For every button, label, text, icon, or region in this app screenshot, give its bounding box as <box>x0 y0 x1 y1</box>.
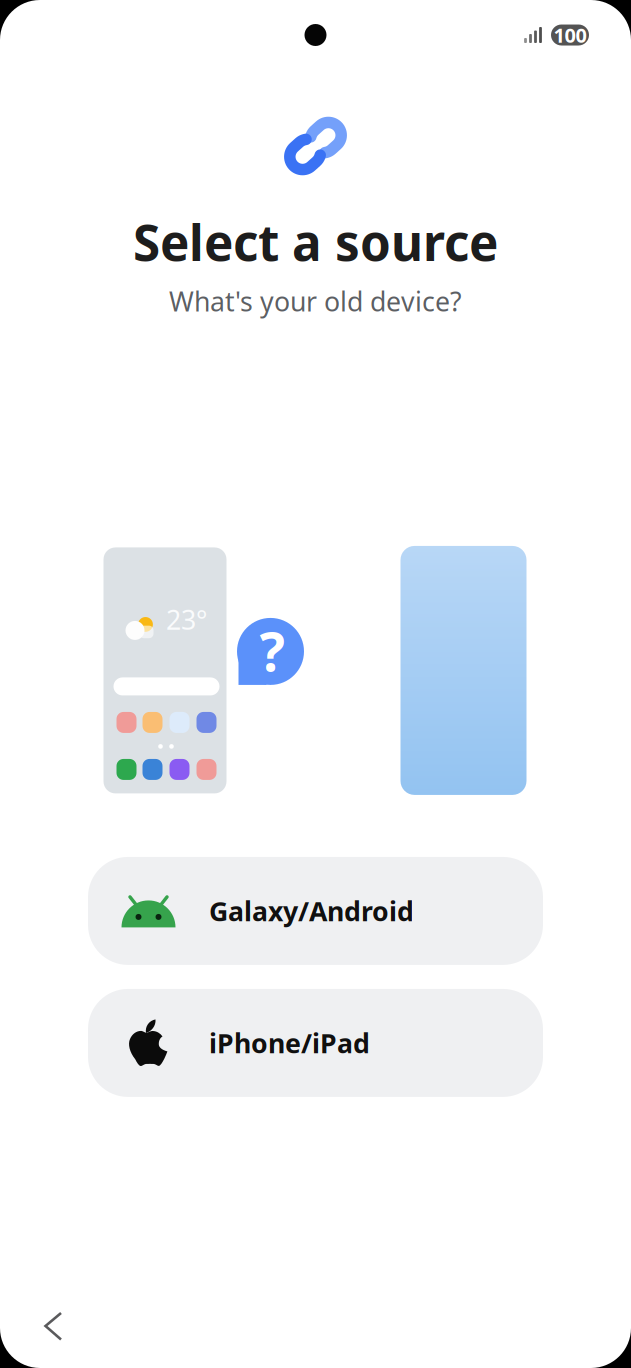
staticText: Galaxy/Android <box>209 893 414 929</box>
staticText: ? <box>259 615 284 686</box>
staticText: iPhone/iPad <box>209 1025 370 1061</box>
staticText: 23° <box>166 602 207 637</box>
staticText: 100 <box>553 22 586 48</box>
staticText: What's your old device? <box>169 283 462 319</box>
staticText: Select a source <box>133 209 498 274</box>
button[interactable]: Galaxy/Android <box>88 857 543 965</box>
button[interactable]: Back <box>24 1291 82 1361</box>
button[interactable]: iPhone/iPad <box>88 989 543 1097</box>
